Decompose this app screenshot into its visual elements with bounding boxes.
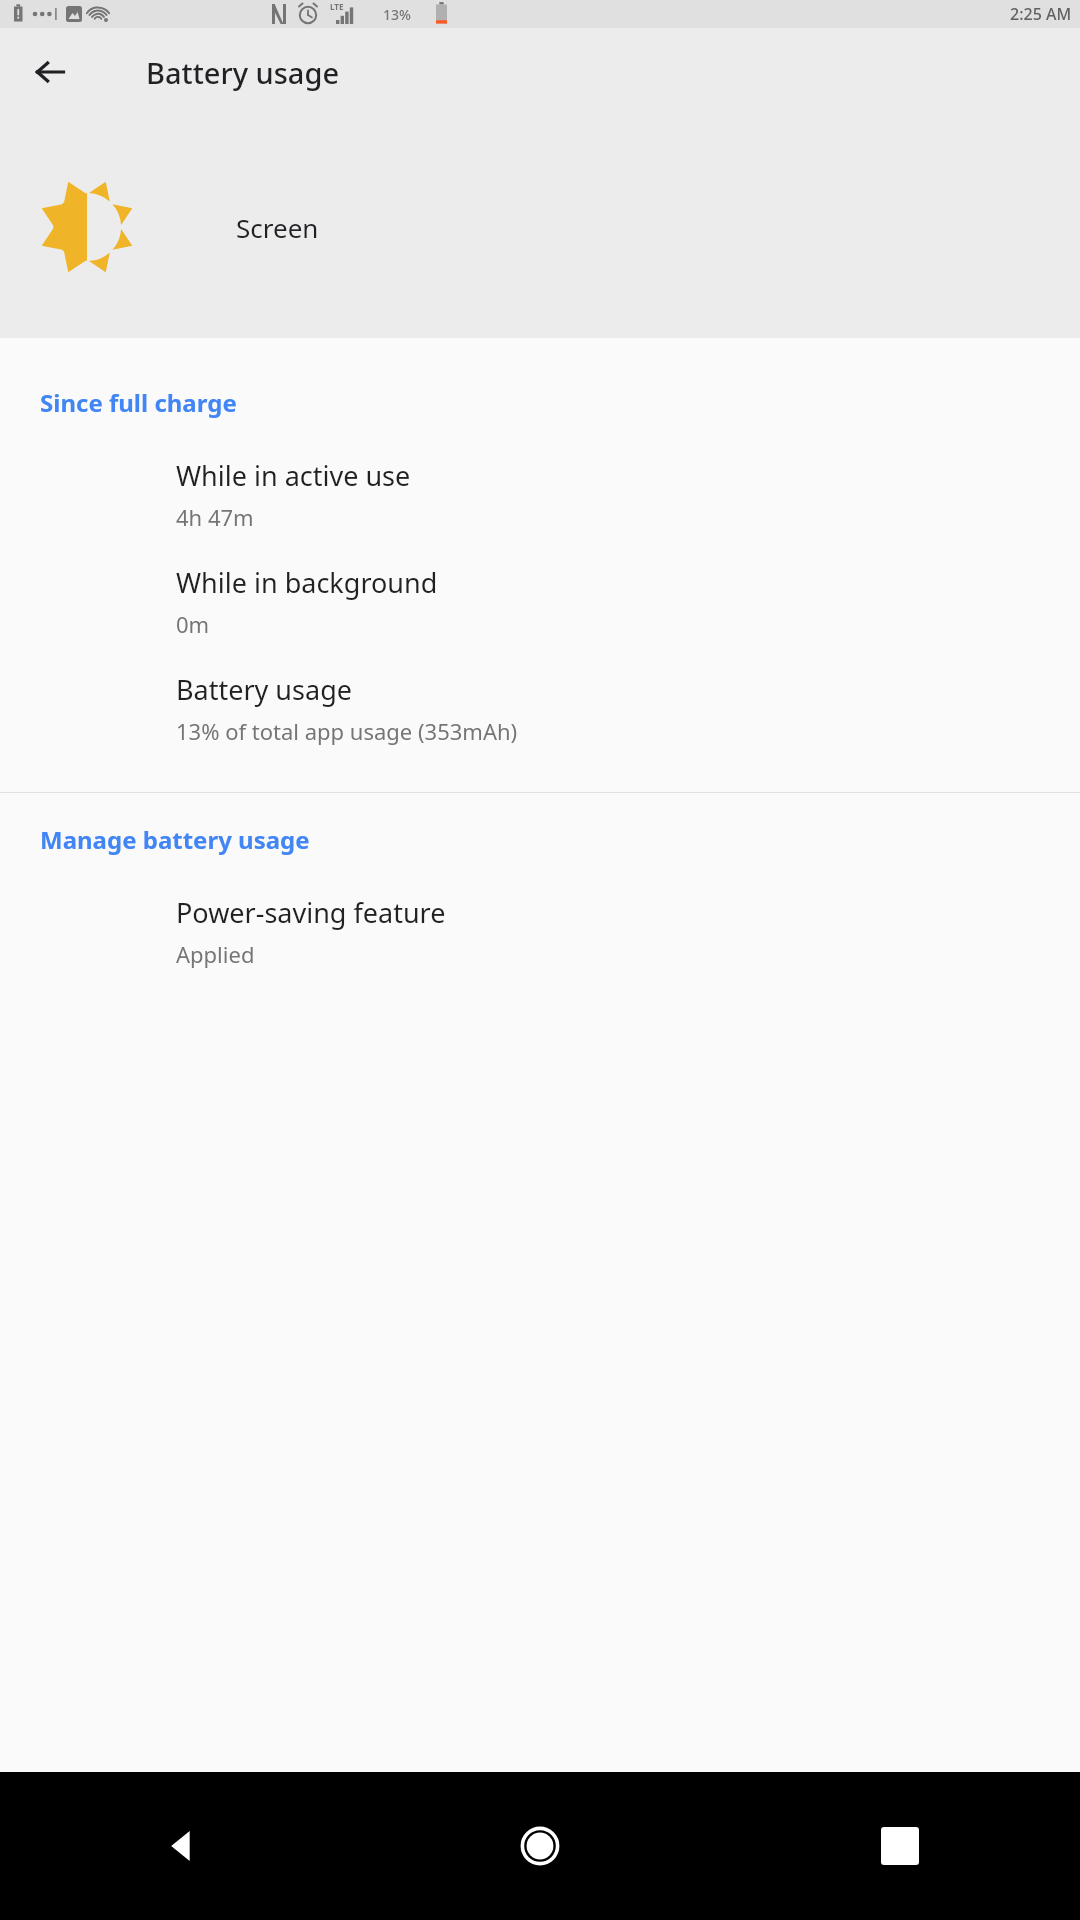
staticText: 4h 47m: [176, 502, 254, 532]
button[interactable]: Home: [360, 1772, 720, 1920]
button[interactable]: Recent apps: [720, 1772, 1080, 1920]
button[interactable]: While in active use: [0, 443, 1080, 550]
staticText: Manage battery usage: [40, 823, 310, 856]
staticText: While in active use: [176, 457, 411, 494]
button[interactable]: Back: [0, 1772, 360, 1920]
button[interactable]: Power-saving feature: [0, 880, 1080, 987]
staticText: Since full charge: [40, 386, 237, 419]
button[interactable]: While in background: [0, 550, 1080, 657]
button[interactable]: Back: [22, 44, 78, 100]
staticText: 13%: [383, 5, 411, 24]
staticText: 13% of total app usage (353mAh): [176, 716, 518, 746]
staticText: 2:25 AM: [1010, 3, 1072, 25]
staticText: Screen: [236, 210, 319, 245]
staticText: Battery usage: [146, 53, 340, 92]
staticText: LTE: [330, 1, 344, 12]
staticText: Applied: [176, 939, 255, 969]
staticText: While in background: [176, 564, 438, 601]
button[interactable]: Battery usage: [0, 657, 1080, 764]
staticText: 0m: [176, 609, 210, 639]
staticText: Power-saving feature: [176, 894, 446, 931]
staticText: Battery usage: [176, 671, 352, 708]
